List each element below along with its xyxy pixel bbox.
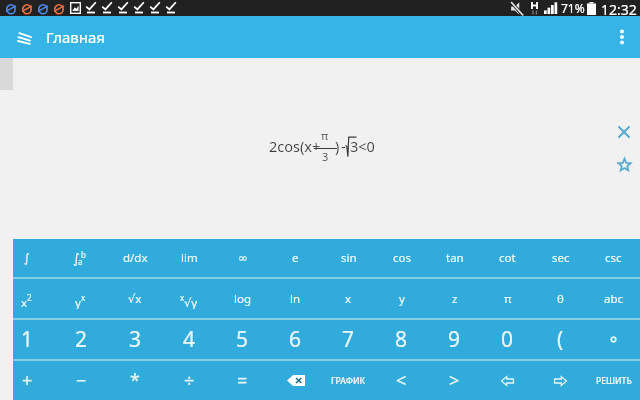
staticText: + (22, 368, 33, 393)
button[interactable]: 8 (375, 320, 428, 359)
button[interactable]: Clear expression (611, 119, 637, 145)
button[interactable]: 2 (54, 320, 108, 359)
button[interactable]: − (54, 361, 108, 400)
staticText: e (292, 250, 299, 266)
staticText: 3 (129, 325, 142, 354)
button[interactable]: x (322, 279, 375, 318)
staticText: x (180, 292, 185, 303)
button[interactable]: ∞ (216, 238, 269, 277)
staticText: √x (128, 291, 142, 307)
staticText: sec (552, 250, 570, 266)
button[interactable]: > (428, 361, 481, 400)
staticText: 2 (75, 325, 88, 354)
staticText: 8 (395, 325, 408, 354)
staticText: 2 (27, 292, 32, 303)
button[interactable]: More options (604, 16, 640, 58)
button[interactable]: ∫ (54, 238, 108, 277)
button[interactable]: 7 (322, 320, 375, 359)
button[interactable]: < (375, 361, 428, 400)
button[interactable]: log (216, 279, 269, 318)
staticText: 3 (322, 149, 329, 164)
staticText: sin (341, 250, 357, 266)
button[interactable]: 0 (481, 320, 534, 359)
staticText: cot (499, 250, 516, 266)
button[interactable]: Add to favorites (611, 151, 637, 177)
button[interactable]: ln (269, 279, 322, 318)
button[interactable]: 6 (269, 320, 322, 359)
button[interactable]: Move cursor left (481, 361, 534, 400)
staticText: csc (605, 250, 622, 266)
staticText: π (504, 291, 512, 307)
button[interactable] (587, 320, 640, 359)
button[interactable]: 9 (428, 320, 481, 359)
button[interactable]: csc (587, 238, 640, 277)
button[interactable]: x (162, 279, 216, 318)
staticText: < (396, 368, 407, 393)
staticText: - (341, 136, 346, 156)
staticText: ∫ (24, 251, 30, 264)
button[interactable]: z (428, 279, 481, 318)
button[interactable]: e (269, 238, 322, 277)
button[interactable]: Backspace (269, 361, 322, 400)
button[interactable]: sec (534, 238, 587, 277)
staticText: cos (393, 250, 411, 266)
staticText: log (234, 291, 251, 307)
button[interactable]: √x (108, 279, 162, 318)
staticText: 7 (342, 325, 355, 354)
button[interactable]: ГРАФИК (322, 361, 375, 400)
staticText: ) (335, 136, 340, 156)
staticText: РЕШИТЬ (596, 375, 632, 387)
staticText: = (237, 368, 248, 393)
staticText: d/dx (123, 250, 148, 266)
button[interactable]: sin (322, 238, 375, 277)
button[interactable]: ∫ (0, 238, 54, 277)
button[interactable]: lim (162, 238, 216, 277)
staticText: 3<0 (350, 136, 375, 156)
staticText: 1 (21, 325, 34, 354)
button[interactable]: 3 (108, 320, 162, 359)
button[interactable]: ÷ (162, 361, 216, 400)
staticText: * (130, 368, 140, 393)
button[interactable]: 1 (0, 320, 54, 359)
staticText: abc (604, 291, 624, 307)
staticText: 71% (561, 0, 585, 16)
staticText: √y (184, 295, 198, 309)
staticText: 5 (236, 325, 249, 354)
button[interactable]: y (54, 279, 108, 318)
button[interactable]: = (216, 361, 269, 400)
staticText: 6 (289, 325, 302, 354)
button[interactable]: y (375, 279, 428, 318)
staticText: b (81, 249, 86, 260)
button[interactable]: 5 (216, 320, 269, 359)
button[interactable]: θ (534, 279, 587, 318)
button[interactable]: Open navigation menu (0, 16, 46, 58)
staticText: > (449, 368, 460, 393)
staticText: y (399, 291, 405, 307)
button[interactable]: cos (375, 238, 428, 277)
staticText: ∞ (238, 251, 248, 264)
button[interactable]: d/dx (108, 238, 162, 277)
staticText: π (321, 128, 329, 143)
button[interactable]: ( (534, 320, 587, 359)
staticText: tan (446, 250, 464, 266)
staticText: ( (557, 325, 564, 354)
other: Move cursor right (554, 376, 567, 386)
button[interactable]: π (481, 279, 534, 318)
button[interactable]: x (0, 279, 54, 318)
staticText: z (452, 291, 458, 307)
staticText: x (345, 291, 352, 307)
button[interactable]: cot (481, 238, 534, 277)
staticText: lim (181, 250, 198, 266)
button[interactable]: abc (587, 279, 640, 318)
staticText: − (76, 368, 87, 393)
button[interactable]: 4 (162, 320, 216, 359)
button[interactable]: РЕШИТЬ (587, 361, 640, 400)
button[interactable]: Move cursor right (534, 361, 587, 400)
button[interactable]: + (0, 361, 54, 400)
staticText: ГРАФИК (331, 375, 366, 387)
button[interactable]: * (108, 361, 162, 400)
button[interactable]: tan (428, 238, 481, 277)
staticText: ∫ (73, 251, 80, 266)
staticText: ln (290, 291, 301, 307)
staticText: a (78, 256, 83, 267)
